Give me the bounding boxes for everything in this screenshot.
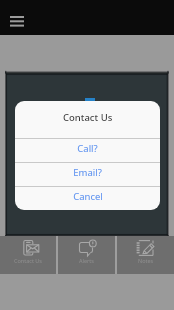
staticText: Contact Us xyxy=(14,257,42,264)
button[interactable]: Notes xyxy=(117,236,174,274)
staticText: Notes xyxy=(138,257,154,264)
button[interactable]: Cancel xyxy=(15,187,160,210)
button[interactable]: Alerts xyxy=(58,236,115,274)
button[interactable]: Contact Us xyxy=(0,236,56,274)
staticText: Email? xyxy=(73,166,102,179)
staticText: Call? xyxy=(77,142,98,155)
staticText: Cancel xyxy=(73,190,103,203)
staticText: Alerts xyxy=(79,257,94,264)
staticText: Contact Us xyxy=(63,111,113,124)
button[interactable]: Menu xyxy=(4,8,30,34)
button[interactable]: Email? xyxy=(15,163,160,186)
button[interactable]: Call? xyxy=(15,139,160,162)
